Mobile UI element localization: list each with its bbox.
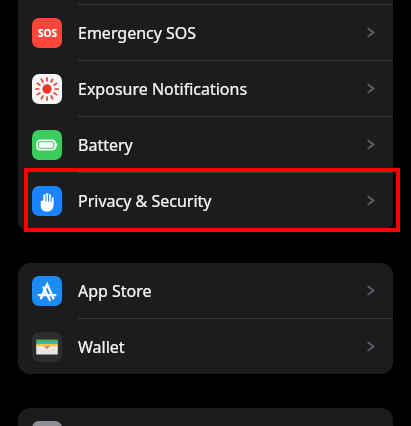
staticText: Exposure Notifications bbox=[78, 78, 248, 100]
button[interactable]: App Store bbox=[18, 263, 393, 318]
button[interactable]: SOS bbox=[18, 5, 393, 60]
button[interactable]: Wallet bbox=[18, 319, 393, 374]
button[interactable]: Exposure Notifications bbox=[18, 61, 393, 116]
button[interactable]: Settings item bbox=[18, 408, 393, 426]
staticText: Battery bbox=[78, 134, 133, 156]
button[interactable]: Privacy & Security bbox=[18, 173, 393, 228]
button[interactable]: Battery bbox=[18, 117, 393, 172]
staticText: Privacy & Security bbox=[78, 190, 212, 212]
staticText: App Store bbox=[78, 280, 152, 302]
staticText: Emergency SOS bbox=[78, 22, 197, 44]
staticText: SOS bbox=[38, 26, 57, 40]
staticText: Wallet bbox=[78, 336, 125, 358]
